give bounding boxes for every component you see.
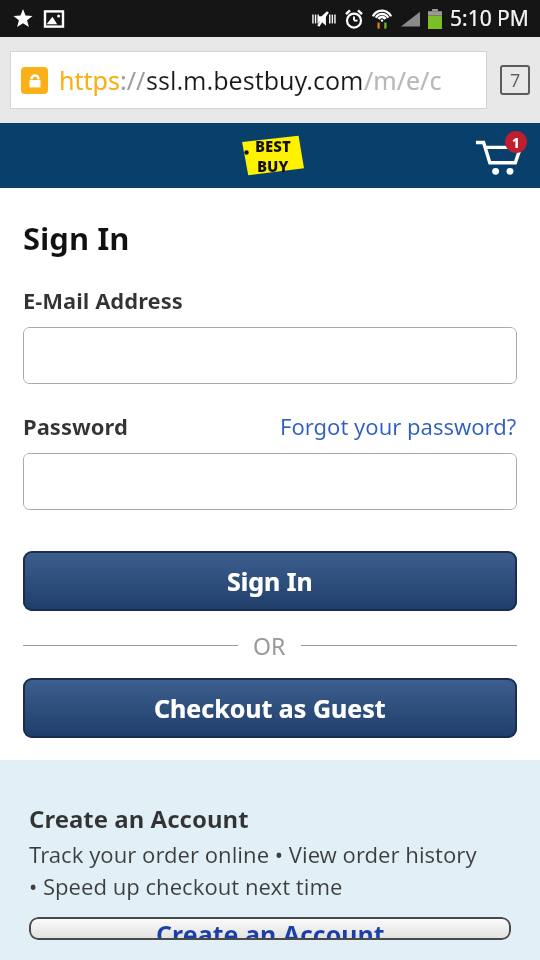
staticText: BUY: [257, 156, 289, 176]
staticText: 1: [512, 133, 521, 152]
staticText: Sign In: [23, 217, 130, 259]
staticText: 7: [510, 68, 521, 93]
staticText: Password: [23, 411, 128, 441]
button[interactable]: Best Buy home: [236, 134, 304, 178]
staticText: Create an Account: [156, 917, 385, 940]
staticText: /m/e/c: [364, 63, 442, 97]
button[interactable]: https: [10, 51, 487, 109]
button[interactable]: Sign In: [23, 551, 517, 611]
staticText: Track your order online • View order his…: [29, 839, 477, 869]
staticText: 5:10 PM: [450, 4, 529, 33]
button[interactable]: Tabs, 7 open: [500, 65, 530, 95]
staticText: OR: [253, 630, 286, 661]
staticText: Checkout as Guest: [154, 691, 386, 725]
staticText: BEST: [255, 136, 291, 156]
staticText: https: [59, 63, 120, 97]
button[interactable]: Cart, 1 item: [474, 132, 522, 180]
staticText: • Speed up checkout next time: [29, 871, 343, 901]
staticText: E-Mail Address: [23, 285, 183, 315]
button[interactable]: Forgot your password?: [280, 411, 517, 441]
staticText: Sign In: [227, 564, 313, 598]
staticText: Forgot your password?: [280, 411, 517, 441]
button[interactable]: [23, 327, 517, 384]
staticText: ://: [120, 63, 146, 97]
button[interactable]: Checkout as Guest: [23, 678, 517, 738]
button[interactable]: [23, 453, 517, 510]
button[interactable]: Create an Account: [29, 917, 511, 940]
staticText: Create an Account: [29, 802, 249, 835]
staticText: ssl.m.bestbuy.com: [146, 63, 364, 97]
